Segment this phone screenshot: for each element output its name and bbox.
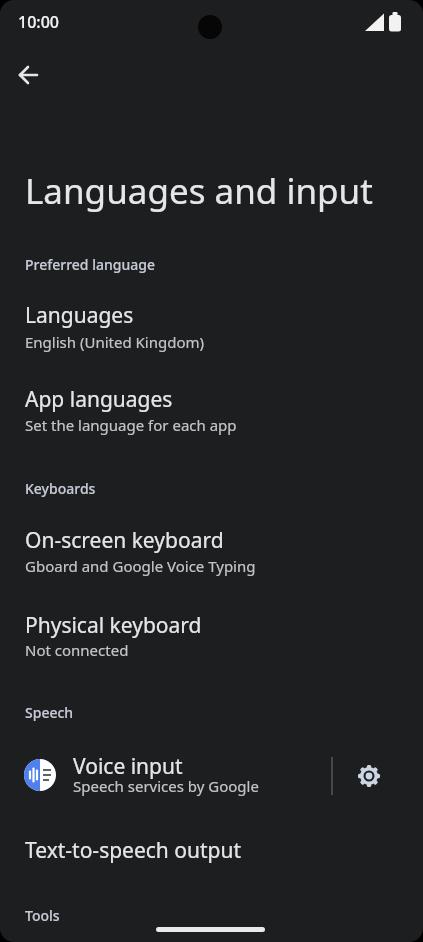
button[interactable]: Text-to-speech output	[0, 829, 423, 873]
staticText: On-screen keyboard	[25, 526, 224, 555]
staticText: Physical keyboard	[25, 611, 202, 640]
staticText: 10:00	[18, 11, 59, 33]
staticText: Voice input	[73, 752, 183, 781]
button[interactable]: App languages	[0, 378, 423, 442]
staticText: Speech services by Google	[73, 776, 259, 796]
staticText: Not connected	[25, 640, 129, 660]
staticText: Gboard and Google Voice Typing	[25, 556, 256, 576]
button[interactable]	[347, 754, 391, 798]
staticText: Preferred language	[25, 255, 155, 274]
staticText: Text-to-speech output	[25, 836, 242, 865]
button[interactable]: Voice input	[0, 745, 330, 805]
staticText: App languages	[25, 385, 173, 414]
staticText: Languages	[25, 301, 134, 330]
staticText: Tools	[25, 906, 60, 925]
button[interactable]: Languages	[0, 294, 423, 358]
button[interactable]: On-screen keyboard	[0, 519, 423, 583]
staticText: Set the language for each app	[25, 415, 237, 435]
button[interactable]: Physical keyboard	[0, 604, 423, 668]
button[interactable]	[8, 55, 48, 95]
staticText: Keyboards	[25, 479, 96, 498]
staticText: Languages and input	[25, 167, 373, 215]
staticText: English (United Kingdom)	[25, 332, 205, 352]
staticText: Speech	[25, 703, 74, 722]
